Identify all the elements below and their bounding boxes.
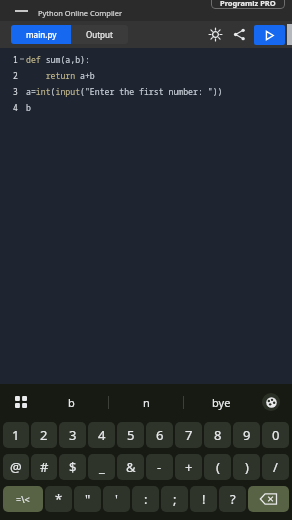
button[interactable]: /: [262, 454, 289, 480]
staticText: -: [157, 458, 162, 476]
staticText: /: [273, 458, 278, 476]
staticText: ): [245, 458, 249, 476]
staticText: @: [10, 458, 22, 476]
staticText: $: [69, 458, 77, 476]
button[interactable]: ): [233, 454, 260, 480]
button[interactable]: n: [109, 387, 183, 417]
button[interactable]: -: [146, 454, 173, 480]
staticText: ;: [173, 490, 177, 508]
button[interactable]: &: [117, 454, 144, 480]
staticText: 2: [13, 70, 18, 81]
staticText: b: [68, 395, 75, 410]
button[interactable]: Programiz PRO: [211, 0, 285, 9]
button[interactable]: !: [190, 486, 217, 512]
button[interactable]: ;: [161, 486, 188, 512]
staticText: 6: [156, 426, 164, 444]
button[interactable]: @: [3, 454, 29, 480]
staticText: 8: [214, 426, 222, 444]
button[interactable]: Backspace: [248, 486, 289, 512]
button[interactable]: #: [31, 454, 57, 480]
staticText: Python Online Compiler: [38, 8, 123, 18]
button[interactable]: ': [103, 486, 130, 512]
staticText: 3: [69, 426, 77, 444]
button[interactable]: 5: [117, 422, 144, 448]
button[interactable]: +: [175, 454, 202, 480]
staticText: 2: [40, 426, 48, 444]
staticText: 4: [13, 102, 18, 113]
staticText: ': [115, 490, 118, 508]
staticText: 1: [13, 54, 18, 65]
button[interactable]: 3: [59, 422, 86, 448]
staticText: ": [85, 490, 91, 508]
staticText: 9: [243, 426, 251, 444]
button[interactable]: 7: [175, 422, 202, 448]
button[interactable]: Output: [71, 25, 128, 44]
staticText: =\<: [16, 493, 30, 505]
button[interactable]: _: [88, 454, 115, 480]
staticText: 3: [13, 86, 18, 97]
button[interactable]: 6: [146, 422, 173, 448]
staticText: a=int(input("Enter the first number: ")): [26, 86, 223, 97]
button[interactable]: Menu: [10, 2, 32, 20]
staticText: return a+b: [26, 70, 95, 81]
staticText: (: [216, 458, 220, 476]
staticText: 7: [185, 426, 193, 444]
button[interactable]: :: [132, 486, 159, 512]
staticText: *: [55, 490, 63, 508]
button[interactable]: 1: [3, 422, 29, 448]
staticText: 0: [272, 426, 280, 444]
button[interactable]: b: [34, 387, 108, 417]
button[interactable]: 8: [204, 422, 231, 448]
staticText: _: [99, 458, 105, 476]
staticText: :: [144, 490, 148, 508]
button[interactable]: =\<: [3, 486, 43, 512]
staticText: def sum(a,b):: [26, 54, 90, 65]
button[interactable]: 0: [262, 422, 289, 448]
button[interactable]: main.py: [11, 25, 71, 44]
button[interactable]: bye: [184, 387, 258, 417]
button[interactable]: Share: [229, 24, 250, 45]
button[interactable]: ": [74, 486, 101, 512]
button[interactable]: 4: [88, 422, 115, 448]
staticText: Output: [86, 29, 113, 40]
staticText: ?: [230, 490, 236, 508]
staticText: 4: [98, 426, 106, 444]
button[interactable]: 9: [233, 422, 260, 448]
staticText: +: [185, 458, 193, 476]
button[interactable]: Themes: [258, 389, 284, 415]
staticText: &: [126, 458, 136, 476]
staticText: bye: [212, 395, 231, 410]
staticText: 1: [12, 426, 20, 444]
staticText: 5: [127, 426, 135, 444]
staticText: n: [143, 395, 150, 410]
staticText: !: [202, 490, 206, 508]
button[interactable]: $: [59, 454, 86, 480]
button[interactable]: Clipboard: [8, 389, 34, 415]
button[interactable]: Theme: [205, 24, 226, 45]
button[interactable]: *: [45, 486, 72, 512]
button[interactable]: Run: [254, 25, 285, 45]
button[interactable]: 2: [31, 422, 57, 448]
staticText: b: [26, 102, 31, 113]
button[interactable]: (: [204, 454, 231, 480]
staticText: #: [40, 458, 49, 476]
staticText: main.py: [26, 29, 57, 40]
button[interactable]: ?: [219, 486, 246, 512]
staticText: Programiz PRO: [220, 0, 276, 8]
